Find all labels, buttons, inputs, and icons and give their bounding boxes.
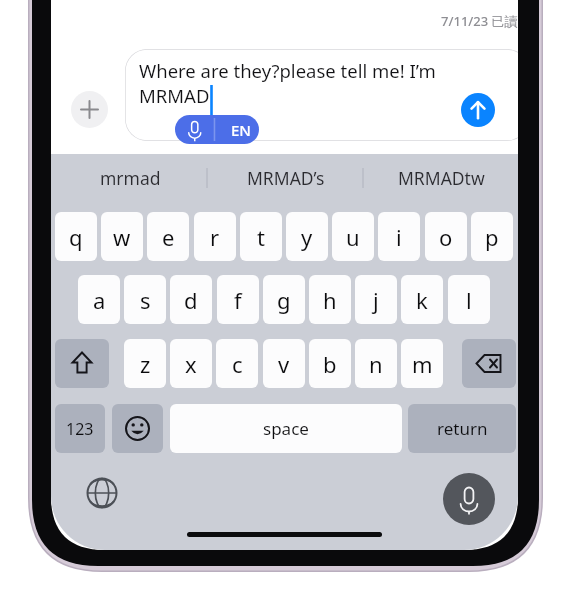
button[interactable]: v: [263, 339, 305, 388]
button[interactable]: return: [408, 404, 516, 453]
staticText: Where are they?please tell me! I’m MRMAD: [139, 58, 436, 109]
button[interactable]: Dictate: [443, 473, 495, 525]
staticText: m: [412, 349, 433, 379]
button[interactable]: f: [217, 275, 259, 324]
staticText: mrmad: [100, 166, 161, 190]
staticText: b: [323, 349, 337, 379]
staticText: 123: [66, 418, 94, 440]
staticText: v: [278, 349, 290, 379]
button[interactable]: s: [124, 275, 166, 324]
button[interactable]: j: [355, 275, 397, 324]
staticText: EN: [231, 120, 251, 140]
button[interactable]: Emoji: [112, 404, 163, 453]
staticText: h: [323, 285, 337, 315]
button[interactable]: h: [309, 275, 351, 324]
button[interactable]: r: [194, 212, 236, 261]
button[interactable]: MRMAD’s: [213, 156, 359, 200]
staticText: y: [301, 222, 313, 252]
staticText: n: [369, 349, 383, 379]
staticText: d: [184, 285, 198, 315]
button[interactable]: t: [240, 212, 282, 261]
button[interactable]: 123: [55, 404, 105, 453]
button[interactable]: u: [332, 212, 374, 261]
button[interactable]: Send: [461, 93, 495, 127]
button[interactable]: c: [216, 339, 258, 388]
button[interactable]: y: [286, 212, 328, 261]
staticText: c: [232, 349, 243, 379]
button[interactable]: l: [448, 275, 490, 324]
button[interactable]: n: [355, 339, 397, 388]
staticText: x: [185, 349, 197, 379]
button[interactable]: space: [170, 404, 402, 453]
button[interactable]: MRMADtw: [368, 156, 514, 200]
staticText: MRMADtw: [398, 166, 485, 190]
staticText: p: [485, 222, 499, 252]
button[interactable]: m: [401, 339, 443, 388]
staticText: space: [263, 417, 309, 440]
staticText: j: [373, 285, 379, 315]
button[interactable]: x: [170, 339, 212, 388]
button[interactable]: Add attachment: [71, 91, 108, 128]
staticText: return: [437, 417, 488, 440]
button[interactable]: z: [124, 339, 166, 388]
button[interactable]: e: [147, 212, 189, 261]
staticText: MRMAD’s: [247, 166, 325, 190]
staticText: e: [162, 222, 175, 252]
button[interactable]: k: [401, 275, 443, 324]
staticText: s: [140, 285, 151, 315]
staticText: z: [140, 349, 151, 379]
button[interactable]: Where are they?please tell me! I’m MRMAD: [125, 49, 518, 141]
button[interactable]: Backspace: [462, 339, 516, 388]
staticText: q: [69, 222, 83, 252]
button[interactable]: q: [55, 212, 97, 261]
button[interactable]: Dictation language: [175, 115, 259, 144]
staticText: g: [277, 285, 291, 315]
staticText: f: [234, 285, 242, 315]
staticText: u: [346, 222, 360, 252]
button[interactable]: i: [378, 212, 420, 261]
button[interactable]: p: [471, 212, 513, 261]
button[interactable]: mrmad: [57, 156, 203, 200]
staticText: 7/11/23 已讀: [441, 12, 518, 30]
staticText: i: [396, 222, 402, 252]
button[interactable]: w: [101, 212, 143, 261]
staticText: r: [210, 222, 220, 252]
staticText: t: [257, 222, 265, 252]
button[interactable]: b: [309, 339, 351, 388]
staticText: o: [439, 222, 453, 252]
staticText: a: [93, 285, 106, 315]
button[interactable]: d: [170, 275, 212, 324]
button[interactable]: g: [263, 275, 305, 324]
button[interactable]: Shift: [55, 339, 109, 388]
staticText: l: [466, 285, 472, 315]
button[interactable]: a: [78, 275, 120, 324]
staticText: k: [416, 285, 428, 315]
staticText: w: [113, 222, 131, 252]
button[interactable]: o: [425, 212, 467, 261]
button[interactable]: Switch keyboard: [83, 474, 121, 512]
